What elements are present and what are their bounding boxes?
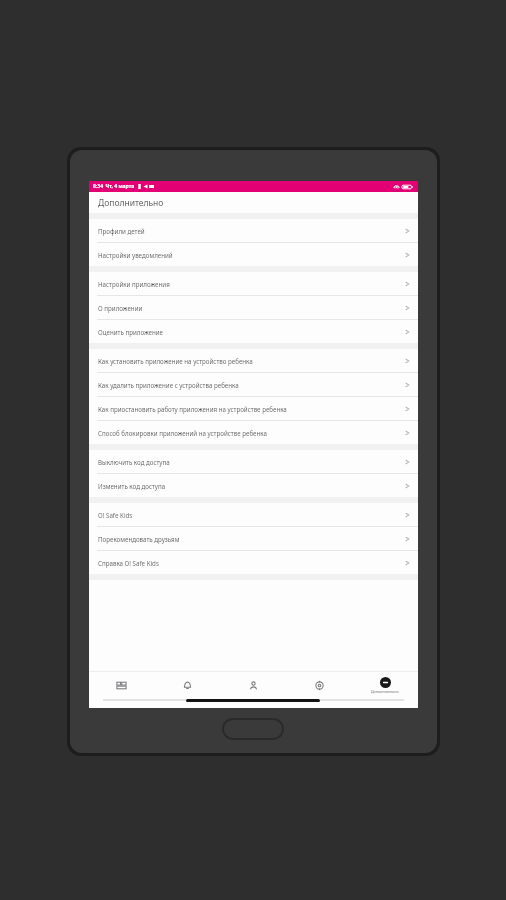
button[interactable]: Профили детей: [89, 219, 418, 242]
button[interactable]: Как приостановить работу приложения на у…: [89, 397, 418, 420]
staticText: Выключить код доступа: [98, 458, 405, 466]
button[interactable]: Порекомендовать друзьям: [89, 527, 418, 550]
button[interactable]: Изменить код доступа: [89, 474, 418, 497]
staticText: Как удалить приложение с устройства ребе…: [98, 381, 405, 389]
button[interactable]: Дополнительно: [352, 672, 418, 699]
button[interactable]: Настройки: [286, 672, 352, 699]
staticText: Оценить приложение: [98, 328, 405, 336]
staticText: Настройки уведомлений: [98, 251, 405, 259]
button[interactable]: Настройки уведомлений: [89, 243, 418, 266]
staticText: Настройки приложения: [98, 280, 405, 288]
staticText: Изменить код доступа: [98, 482, 405, 490]
button[interactable]: О приложении: [89, 296, 418, 319]
staticText: Справка О! Safe Kids: [98, 559, 405, 567]
button[interactable]: Как установить приложение на устройство …: [89, 349, 418, 372]
staticText: Как установить приложение на устройство …: [98, 357, 405, 365]
staticText: 8:34 Чт, 4 марта: [93, 183, 135, 190]
staticText: Дополнительно: [98, 197, 164, 209]
button[interactable]: Справка О! Safe Kids: [89, 551, 418, 574]
button[interactable]: Главная: [89, 672, 154, 699]
staticText: Способ блокировки приложений на устройст…: [98, 429, 405, 437]
button[interactable]: О! Safe Kids: [89, 503, 418, 526]
button[interactable]: Профиль: [220, 672, 286, 699]
staticText: Дополнительно: [371, 689, 399, 694]
staticText: Порекомендовать друзьям: [98, 535, 405, 543]
staticText: Как приостановить работу приложения на у…: [98, 405, 405, 413]
staticText: Профили детей: [98, 227, 405, 235]
staticText: О! Safe Kids: [98, 511, 405, 519]
staticText: О приложении: [98, 304, 405, 312]
button[interactable]: Способ блокировки приложений на устройст…: [89, 421, 418, 444]
button[interactable]: Настройки приложения: [89, 272, 418, 295]
button[interactable]: Как удалить приложение с устройства ребе…: [89, 373, 418, 396]
button[interactable]: Уведомления: [154, 672, 220, 699]
button[interactable]: Оценить приложение: [89, 320, 418, 343]
button[interactable]: Выключить код доступа: [89, 450, 418, 473]
